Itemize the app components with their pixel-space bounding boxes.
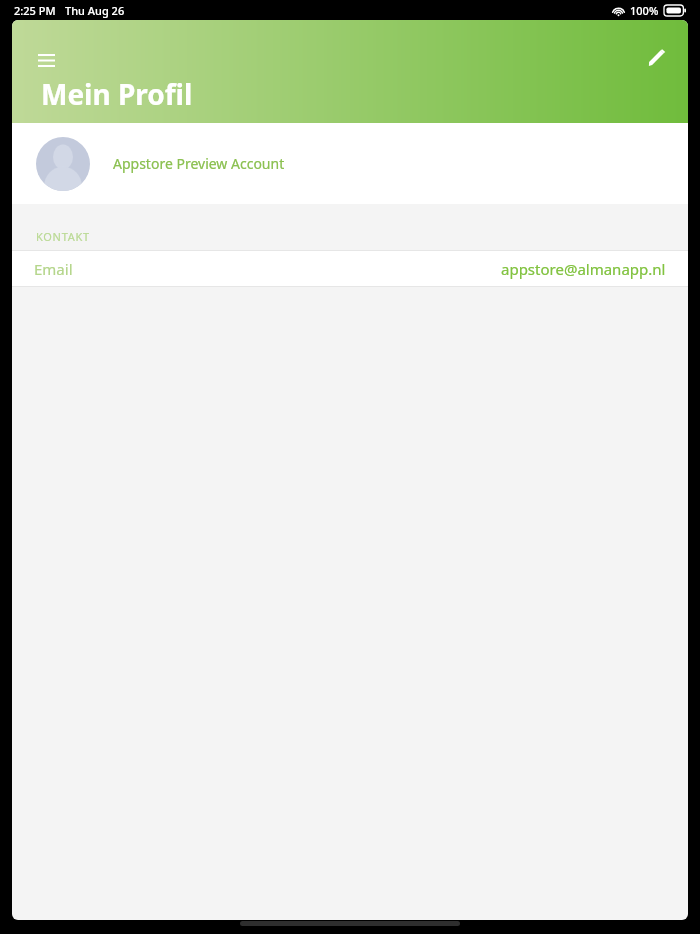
button[interactable]: Email xyxy=(12,251,688,286)
staticText: Appstore Preview Account xyxy=(113,154,285,173)
staticText: Email xyxy=(34,259,73,279)
button[interactable]: Menu xyxy=(22,36,70,84)
button[interactable]: Appstore Preview Account xyxy=(12,123,688,204)
staticText: 100% xyxy=(630,3,659,18)
button[interactable]: Edit xyxy=(632,34,680,82)
staticText: Thu Aug 26 xyxy=(65,3,125,18)
staticText: appstore@almanapp.nl xyxy=(501,259,666,279)
staticText: KONTAKT xyxy=(36,229,90,244)
staticText: Mein Profil xyxy=(41,75,193,113)
staticText: 2:25 PM xyxy=(14,3,56,18)
